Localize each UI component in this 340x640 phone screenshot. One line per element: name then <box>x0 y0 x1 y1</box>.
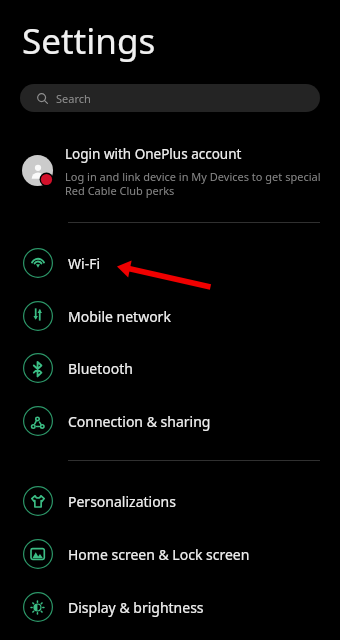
button[interactable]: Display & brightness <box>0 580 340 633</box>
staticText: Display & brightness <box>68 598 204 617</box>
staticText: Bluetooth <box>68 359 133 378</box>
button[interactable]: Settings <box>22 17 156 65</box>
staticText: Search <box>56 91 91 106</box>
button[interactable]: Wi-Fi <box>0 236 340 289</box>
button[interactable]: Search <box>20 84 320 112</box>
button[interactable]: Connection & sharing <box>0 394 340 447</box>
button[interactable]: Home screen & Lock screen <box>0 527 340 580</box>
button[interactable]: Personalizations <box>0 474 340 527</box>
button[interactable]: Login with OnePlus account <box>0 138 340 206</box>
staticText: Login with OnePlus account <box>65 145 242 163</box>
staticText: Home screen & Lock screen <box>68 545 250 564</box>
staticText: Settings <box>22 17 156 65</box>
staticText: Personalizations <box>68 492 176 511</box>
staticText: Connection & sharing <box>68 412 211 431</box>
button[interactable]: Bluetooth <box>0 341 340 394</box>
staticText: Mobile network <box>68 307 171 326</box>
staticText: Log in and link device in My Devices to … <box>65 169 333 199</box>
staticText: Wi-Fi <box>68 254 101 273</box>
button[interactable]: Mobile network <box>0 289 340 342</box>
